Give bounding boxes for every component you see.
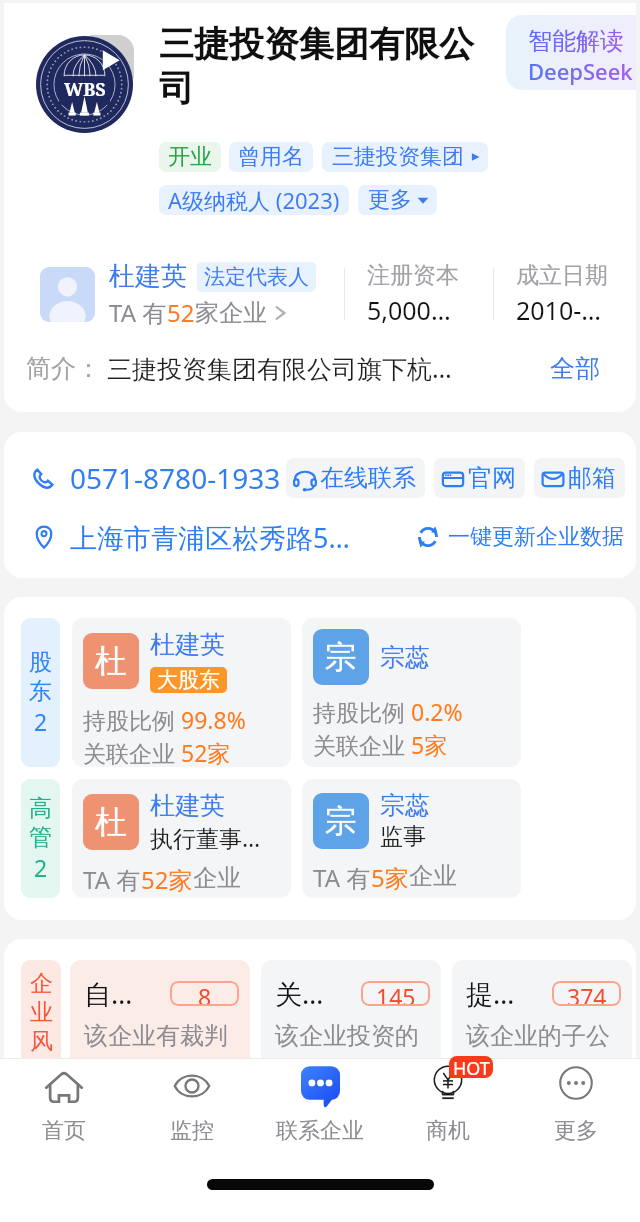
staticText: 2010-…: [516, 293, 602, 327]
button[interactable]: 杜建英: [40, 255, 344, 333]
button[interactable]: 企: [21, 960, 61, 1100]
staticText: 5家: [411, 729, 448, 760]
staticText: 0571-8780-1933: [70, 459, 281, 497]
staticText: 杜: [95, 641, 127, 681]
staticText: 宗蕊: [380, 790, 430, 821]
staticText: 52: [167, 296, 195, 329]
button[interactable]: Company logo: [35, 35, 134, 134]
staticText: 该企业投资的 戏消堂 (北京: [275, 1021, 419, 1088]
staticText: 宗: [325, 637, 357, 677]
staticText: 管: [29, 823, 52, 852]
staticText: 成立日期: [516, 261, 608, 290]
staticText: 关…: [275, 975, 324, 1012]
staticText: 持股比例: [313, 696, 411, 727]
staticText: WBS: [64, 77, 106, 102]
button[interactable]: 一键更新企业数据: [415, 523, 624, 551]
staticText: 5,000…: [367, 293, 451, 327]
staticText: 在线联系: [320, 463, 416, 493]
staticText: 简介：: [26, 353, 101, 384]
staticText: 52家: [141, 863, 193, 896]
staticText: 2: [34, 706, 48, 737]
button[interactable]: 宗: [302, 779, 521, 898]
staticText: 8: [198, 981, 212, 1006]
button[interactable]: 更多: [512, 1059, 640, 1148]
button[interactable]: 宗: [302, 618, 521, 767]
staticText: 监事: [380, 822, 426, 851]
staticText: 大股东: [157, 667, 220, 693]
staticText: 风: [30, 1027, 53, 1056]
button[interactable]: 股: [21, 618, 60, 767]
button[interactable]: 简介：: [26, 347, 600, 389]
staticText: TA 有: [83, 863, 141, 896]
staticText: 杜建英: [150, 629, 225, 660]
staticText: 三捷投资集团: [332, 143, 464, 171]
staticText: 5家: [371, 861, 409, 894]
button[interactable]: 关…: [261, 960, 441, 1100]
staticText: 企业: [193, 863, 241, 893]
staticText: 执行董事…: [150, 822, 261, 853]
button[interactable]: 自…: [70, 960, 250, 1100]
staticText: 股: [29, 648, 52, 677]
staticText: 该企业的子公 司三捷投资: [466, 1021, 610, 1087]
staticText: 宗: [325, 801, 357, 841]
staticText: 高: [29, 794, 52, 823]
staticText: 企业: [409, 861, 457, 891]
staticText: 杜建英: [109, 260, 187, 293]
staticText: 首页: [42, 1117, 86, 1145]
button[interactable]: 智能解读: [506, 15, 636, 90]
staticText: 三捷投资集团有限公司: [159, 22, 484, 110]
button[interactable]: 在线联系: [286, 458, 425, 498]
staticText: TA 有: [109, 296, 167, 329]
staticText: 2: [34, 852, 48, 883]
staticText: A级纳税人 (2023): [168, 185, 340, 215]
staticText: 业: [30, 998, 53, 1027]
button[interactable]: 上海市青浦区崧秀路5…: [70, 519, 350, 556]
staticText: 联系企业: [276, 1117, 364, 1145]
button[interactable]: 首页: [0, 1059, 128, 1148]
button[interactable]: 曾用名: [229, 142, 313, 172]
button[interactable]: 邮箱: [534, 458, 625, 498]
staticText: TA 有: [313, 861, 371, 894]
staticText: 全部: [550, 353, 600, 384]
button[interactable]: 官网: [434, 458, 525, 498]
staticText: 一键更新企业数据: [448, 523, 624, 551]
staticText: 该企业有裁判 文书信息 (2): [84, 1021, 228, 1088]
staticText: 家企业: [195, 298, 267, 328]
staticText: 东: [29, 677, 52, 706]
staticText: 374: [567, 981, 607, 1006]
staticText: HOT: [453, 1056, 490, 1078]
button[interactable]: HOT: [384, 1059, 512, 1148]
staticText: 更多: [368, 186, 412, 214]
staticText: 监控: [170, 1117, 214, 1145]
staticText: 关联企业: [313, 729, 411, 760]
staticText: 曾用名: [238, 143, 304, 171]
staticText: 注册资本: [367, 261, 459, 290]
staticText: 自…: [84, 975, 133, 1012]
staticText: 宗蕊: [380, 642, 430, 673]
staticText: 99.8%: [181, 704, 246, 735]
staticText: 开业: [168, 143, 212, 171]
staticText: 杜: [95, 802, 127, 842]
staticText: 杜建英: [150, 790, 225, 821]
staticText: DeepSeek: [528, 56, 633, 86]
button[interactable]: 三捷投资集团: [322, 142, 488, 172]
button[interactable]: 杜: [72, 779, 291, 898]
staticText: 邮箱: [568, 463, 616, 493]
staticText: 三捷投资集团有限公司旗下杭…: [107, 351, 540, 385]
staticText: 更多: [554, 1117, 598, 1145]
button[interactable]: 监控: [128, 1059, 256, 1148]
button[interactable]: 开业: [159, 142, 221, 172]
staticText: 提…: [466, 975, 515, 1012]
staticText: 法定代表人: [204, 264, 309, 290]
button[interactable]: 高: [21, 779, 60, 898]
staticText: 企: [30, 969, 53, 998]
staticText: 52家: [181, 737, 231, 767]
button[interactable]: 更多: [358, 185, 437, 215]
button[interactable]: 提…: [452, 960, 632, 1100]
staticText: 官网: [468, 463, 516, 493]
staticText: 商机: [426, 1117, 470, 1145]
button[interactable]: 杜: [72, 618, 291, 767]
staticText: 145: [376, 981, 416, 1006]
button[interactable]: 联系企业: [256, 1059, 384, 1148]
button[interactable]: A级纳税人 (2023): [159, 185, 349, 215]
